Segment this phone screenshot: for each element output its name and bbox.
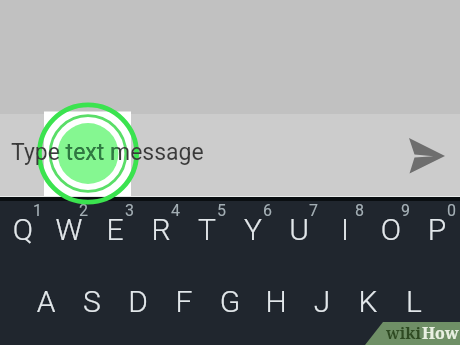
button[interactable]: Send bbox=[391, 130, 453, 182]
staticText: 3 bbox=[125, 201, 134, 220]
staticText: 4 bbox=[171, 201, 180, 220]
button[interactable]: L bbox=[391, 272, 437, 332]
button[interactable]: S bbox=[69, 272, 115, 332]
button[interactable]: 0 bbox=[414, 201, 460, 269]
button[interactable]: 4 bbox=[138, 201, 184, 269]
staticText: 6 bbox=[263, 201, 272, 220]
staticText: 7 bbox=[309, 201, 318, 220]
button[interactable]: 2 bbox=[46, 201, 92, 269]
button[interactable]: F bbox=[161, 272, 207, 332]
staticText: 2 bbox=[79, 201, 88, 220]
staticText: D bbox=[115, 284, 161, 319]
button[interactable]: 6 bbox=[230, 201, 276, 269]
staticText: wiki bbox=[386, 322, 422, 344]
staticText: 8 bbox=[355, 201, 364, 220]
staticText: R bbox=[138, 212, 184, 247]
staticText: H bbox=[253, 284, 299, 319]
button[interactable]: 7 bbox=[276, 201, 322, 269]
staticText: J bbox=[299, 284, 345, 319]
staticText: 9 bbox=[401, 201, 410, 220]
button[interactable]: 3 bbox=[92, 201, 138, 269]
button[interactable]: H bbox=[253, 272, 299, 332]
staticText: G bbox=[207, 284, 253, 319]
button[interactable]: 5 bbox=[184, 201, 230, 269]
button[interactable]: 9 bbox=[368, 201, 414, 269]
staticText: P bbox=[414, 212, 460, 247]
button[interactable]: J bbox=[299, 272, 345, 332]
staticText: T bbox=[184, 212, 230, 247]
staticText: O bbox=[368, 212, 414, 247]
button[interactable]: A bbox=[23, 272, 69, 332]
staticText: L bbox=[391, 284, 437, 319]
staticText: K bbox=[345, 284, 391, 319]
staticText: 0 bbox=[447, 201, 456, 220]
staticText: U bbox=[276, 212, 322, 247]
staticText: 5 bbox=[217, 201, 226, 220]
staticText: S bbox=[69, 284, 115, 319]
button[interactable]: G bbox=[207, 272, 253, 332]
staticText: A bbox=[23, 284, 69, 319]
staticText: I bbox=[322, 212, 368, 247]
button[interactable]: K bbox=[345, 272, 391, 332]
staticText: W bbox=[46, 212, 92, 247]
staticText: Y bbox=[230, 212, 276, 247]
button[interactable]: 8 bbox=[322, 201, 368, 269]
staticText: Q bbox=[0, 212, 46, 247]
staticText: 1 bbox=[33, 201, 42, 220]
staticText: E bbox=[92, 212, 138, 247]
button[interactable]: 1 bbox=[0, 201, 46, 269]
button[interactable]: D bbox=[115, 272, 161, 332]
staticText: How bbox=[422, 322, 459, 344]
staticText: F bbox=[161, 284, 207, 319]
